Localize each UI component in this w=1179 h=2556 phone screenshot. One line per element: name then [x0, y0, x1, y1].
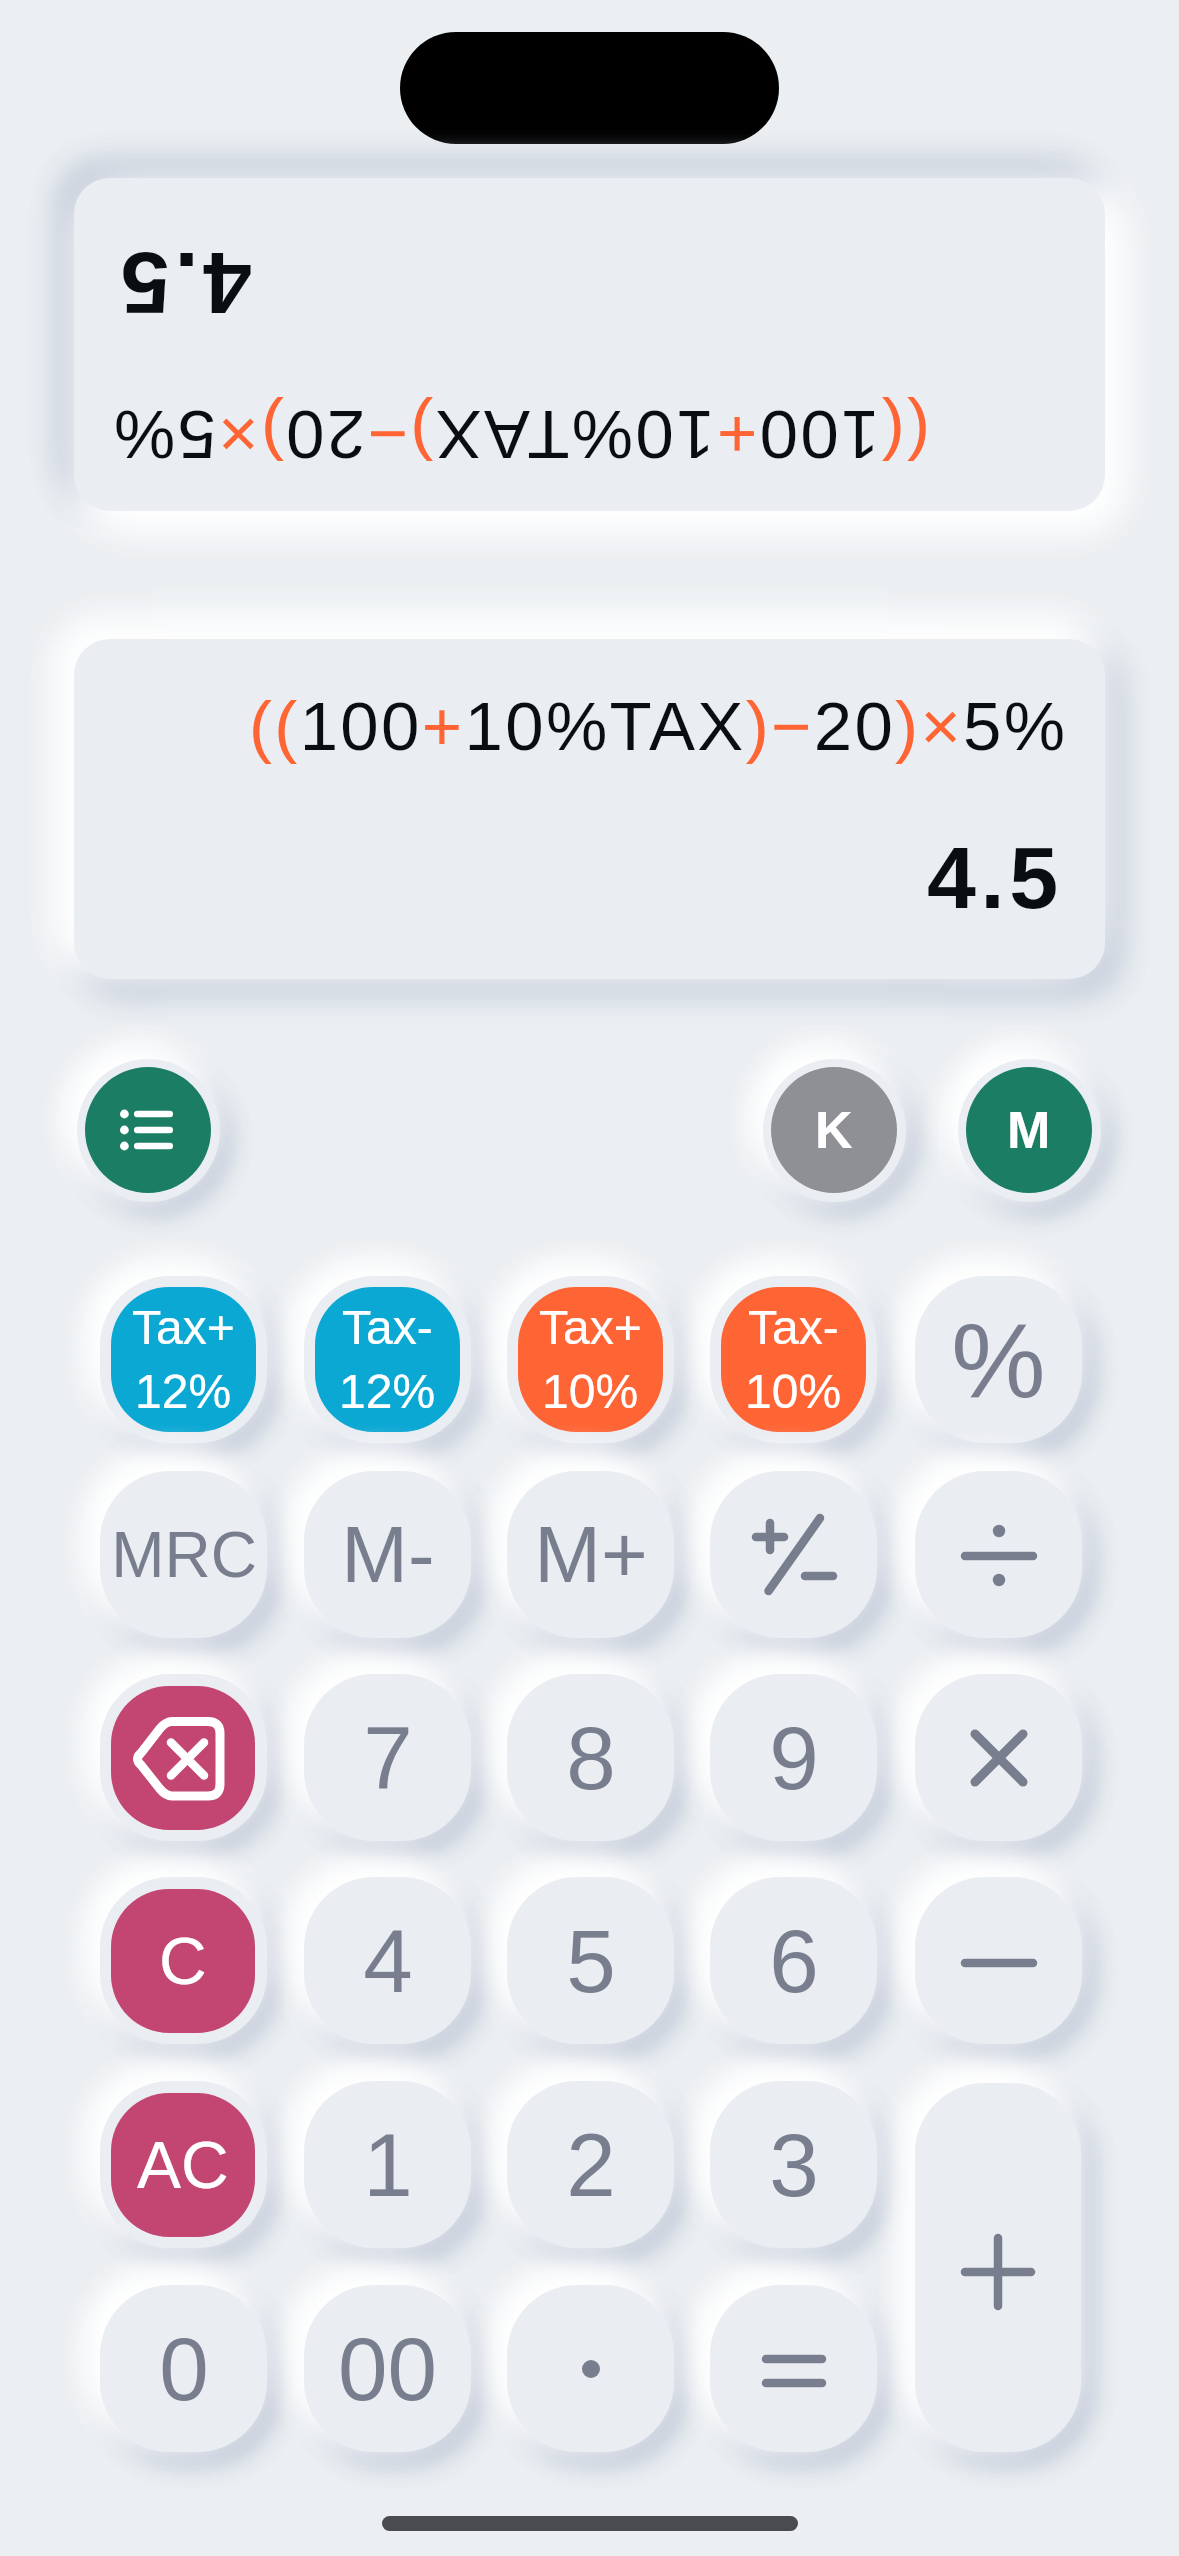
button[interactable]: Minus: [915, 1877, 1082, 2044]
button[interactable]: Multiply: [915, 1674, 1082, 1841]
staticText: 12%: [135, 1365, 232, 1419]
staticText: 12%: [339, 1365, 436, 1419]
button[interactable]: Tax+: [100, 1276, 267, 1443]
staticText: 1: [363, 2115, 413, 2214]
staticText: %: [951, 1301, 1046, 1419]
button[interactable]: 4: [304, 1877, 471, 2044]
staticText: 4.5: [116, 235, 252, 333]
button[interactable]: MRC: [100, 1471, 267, 1638]
staticText: 10%: [542, 1365, 639, 1419]
button[interactable]: Divide: [915, 1471, 1082, 1638]
staticText: 4: [363, 1911, 413, 2010]
staticText: Tax+: [132, 1301, 235, 1355]
button[interactable]: M-: [304, 1471, 471, 1638]
staticText: 0: [159, 2319, 209, 2418]
button[interactable]: Tax-: [304, 1276, 471, 1443]
staticText: MRC: [111, 1519, 257, 1591]
staticText: Tax+: [539, 1301, 642, 1355]
button[interactable]: Plus: [915, 2083, 1081, 2452]
button[interactable]: 8: [507, 1674, 674, 1841]
staticText: 3: [769, 2115, 819, 2214]
button[interactable]: 6: [710, 1877, 877, 2044]
button[interactable]: AC: [100, 2081, 267, 2248]
button[interactable]: Equals: [710, 2285, 877, 2452]
button[interactable]: 9: [710, 1674, 877, 1841]
staticText: M: [1007, 1101, 1051, 1159]
button[interactable]: 1: [304, 2081, 471, 2248]
button[interactable]: Menu: [77, 1059, 220, 1202]
button[interactable]: 2: [507, 2081, 674, 2248]
staticText: 7: [363, 1708, 413, 1807]
staticText: AC: [137, 2128, 229, 2202]
staticText: 6: [769, 1911, 819, 2010]
staticText: ((100+10%TAX)−20)×5%: [111, 396, 930, 473]
button[interactable]: Backspace: [100, 1674, 267, 1841]
staticText: M+: [534, 1510, 648, 1599]
button[interactable]: 0: [100, 2285, 267, 2452]
button[interactable]: M+: [507, 1471, 674, 1638]
button[interactable]: %: [915, 1276, 1082, 1443]
button[interactable]: C: [100, 1877, 267, 2044]
button[interactable]: Tax-: [710, 1276, 877, 1443]
staticText: 9: [769, 1708, 819, 1807]
staticText: C: [159, 1924, 207, 1998]
button[interactable]: Constant K: [763, 1059, 906, 1202]
staticText: K: [815, 1101, 853, 1159]
staticText: ((100+10%TAX)−20)×5%: [249, 688, 1068, 765]
button[interactable]: Memory M: [958, 1059, 1101, 1202]
staticText: Tax-: [342, 1301, 433, 1355]
button[interactable]: Plus minus: [710, 1471, 877, 1638]
button[interactable]: 00: [304, 2285, 471, 2452]
staticText: M-: [341, 1510, 435, 1599]
button[interactable]: 3: [710, 2081, 877, 2248]
button[interactable]: Tax+: [507, 1276, 674, 1443]
staticText: 00: [338, 2319, 437, 2418]
staticText: 2: [566, 2115, 616, 2214]
staticText: 5: [566, 1911, 616, 2010]
staticText: 8: [566, 1708, 616, 1807]
button[interactable]: 7: [304, 1674, 471, 1841]
staticText: Tax-: [748, 1301, 839, 1355]
staticText: 4.5: [927, 828, 1063, 926]
staticText: 10%: [745, 1365, 842, 1419]
button[interactable]: 5: [507, 1877, 674, 2044]
button[interactable]: Decimal point: [507, 2285, 674, 2452]
